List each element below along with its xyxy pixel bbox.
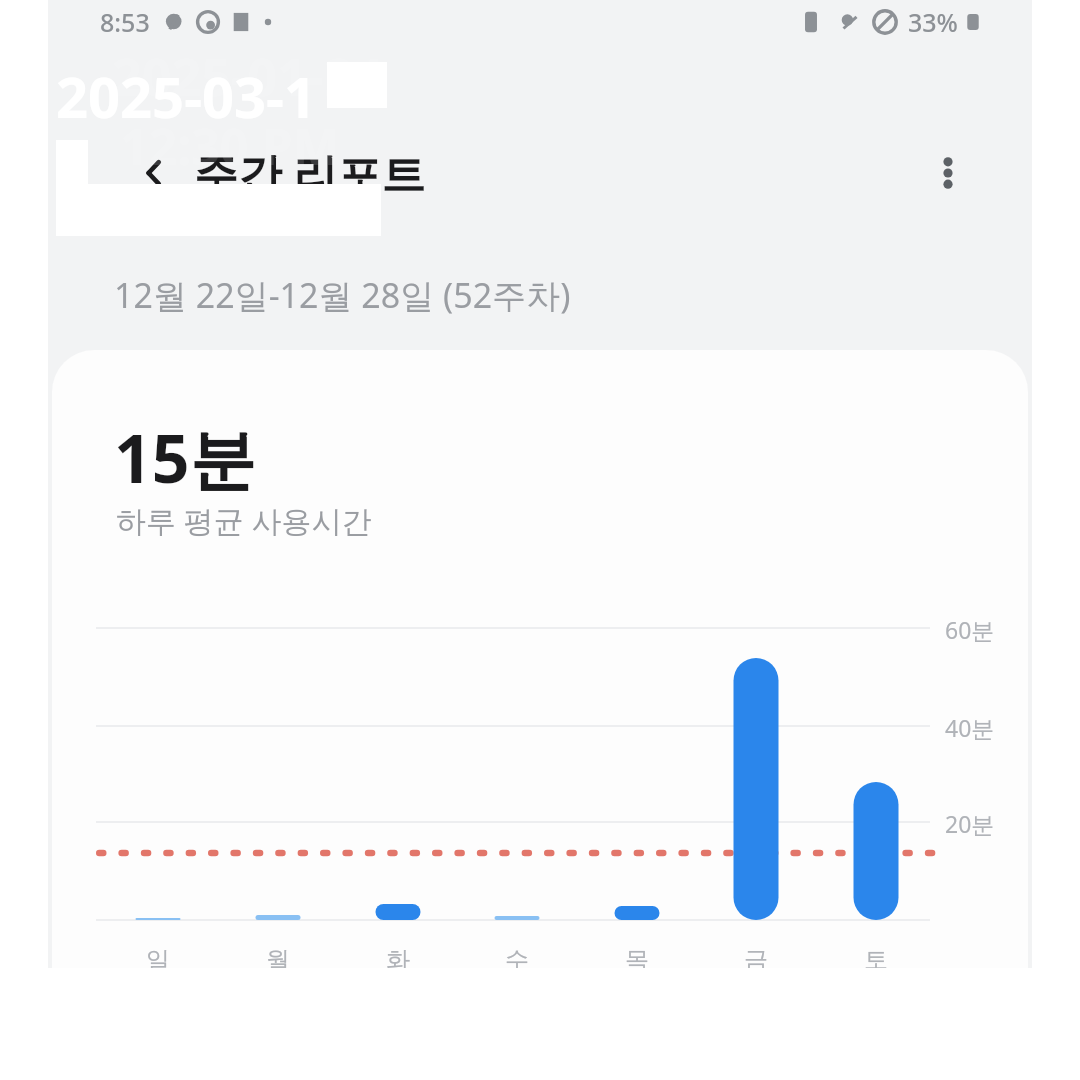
staticText: 2025-03-1 (56, 58, 317, 134)
button[interactable]: 15분 (52, 350, 1028, 968)
staticText: 일 (146, 945, 170, 968)
staticText: 15분 (114, 412, 256, 502)
button[interactable]: More options (912, 137, 984, 209)
staticText: 목 (625, 945, 649, 968)
staticText: 12:30 PM (120, 112, 340, 180)
button[interactable]: Back (122, 141, 186, 205)
staticText: 월 (266, 945, 290, 968)
staticText: 2025-01-24 (112, 40, 384, 111)
staticText: 주간 리포트 (194, 143, 426, 203)
staticText: 하루 평균 사용시간 (116, 500, 372, 541)
staticText: 화 (386, 945, 410, 968)
staticText: 33% (908, 5, 958, 39)
staticText: 40분 (945, 712, 995, 743)
staticText: 금 (744, 945, 768, 968)
staticText: 20분 (945, 808, 995, 839)
staticText: 60분 (945, 614, 995, 645)
staticText: 12월 22일-12월 28일 (52주차) (114, 272, 571, 318)
staticText: 수 (505, 945, 529, 968)
staticText: 8:53 (100, 5, 150, 39)
staticText: 토 (864, 945, 888, 968)
